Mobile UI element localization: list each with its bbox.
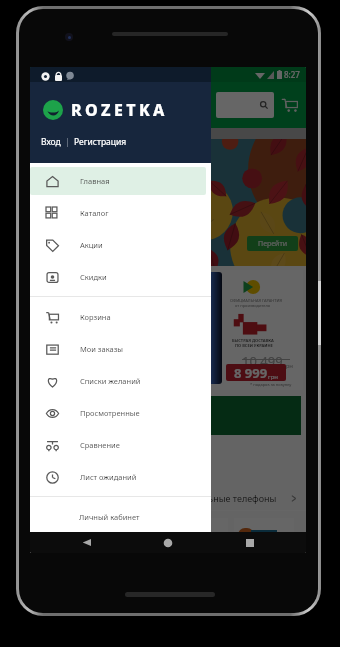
staticText: * подарок за покупку [250,382,292,387]
button[interactable]: Home [154,532,182,553]
button[interactable]: Просмотренные [30,399,206,427]
staticText: 10.499 [242,352,283,370]
staticText: 8 999 [234,364,268,381]
button[interactable]: Акции [30,231,206,259]
staticText: Корзина [80,312,111,322]
button[interactable]: Back [72,532,100,553]
staticText: Вход [41,136,61,148]
staticText: 8:27 [284,69,300,80]
staticText: Мои заказы [80,344,124,354]
button[interactable]: Каталог [30,199,206,227]
button[interactable] [35,396,301,435]
button[interactable]: Корзина [30,303,206,331]
button[interactable]: Сравнение [30,431,206,459]
staticText: грн [283,362,293,370]
button[interactable]: Смартфоны и мобильные телефоны [38,487,298,509]
button[interactable] [102,518,162,552]
button[interactable]: Лист ожиданий [30,463,206,491]
button[interactable]: Search [216,92,274,118]
button[interactable]: Cart [282,97,298,113]
staticText: Сравнение [80,440,120,450]
button[interactable]: Мои заказы [30,335,206,363]
staticText: Главная [80,176,110,186]
staticText: -50% [35,213,96,248]
staticText: БЫСТРАЯ ДОСТАВКА [232,338,274,343]
staticText: Списки желаний [80,376,141,386]
staticText: Скидки [80,272,107,282]
button[interactable]: Регистрация [74,136,127,148]
button[interactable]: Списки желаний [30,367,206,395]
button[interactable]: Вход [41,136,61,148]
staticText: ОФИЦИАЛЬНАЯ ГАРАНТИЯ [230,298,283,303]
staticText: ПО ВСЕЙ УКРАИНЕ [235,343,273,348]
button[interactable]: Recents [236,532,264,553]
staticText: ROZETKA [71,99,168,121]
staticText: Осенний [35,153,131,183]
button[interactable]: Скидки [30,263,206,291]
staticText: Лист ожиданий [80,472,137,482]
staticText: Личный кабинет [79,512,140,522]
button[interactable]: Главная [30,167,206,195]
button[interactable] [33,270,303,390]
staticText: | [65,136,70,148]
staticText: Перейти [258,239,288,249]
button[interactable]: Перейти [247,236,298,251]
button[interactable] [168,518,228,552]
button[interactable] [234,518,294,552]
staticText: Акции [80,240,103,250]
staticText: Смартфоны и мобильные телефоны [118,492,277,504]
button[interactable]: Личный кабинет [30,501,211,533]
staticText: от производителя [235,303,271,308]
staticText: Каталог [80,208,109,218]
staticText: уикенд [35,183,113,213]
staticText: грн [268,373,278,381]
staticText: Регистрация [74,136,127,148]
button[interactable] [36,518,96,552]
staticText: Просмотренные [80,408,140,418]
